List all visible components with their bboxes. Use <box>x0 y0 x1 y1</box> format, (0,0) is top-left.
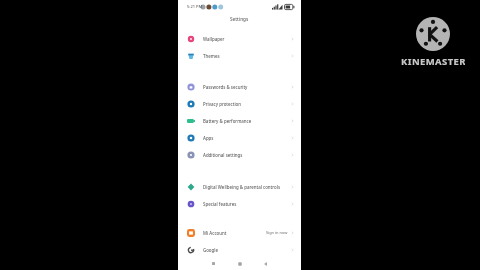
button[interactable]: Passwords & security <box>178 78 301 95</box>
staticText: Apps <box>203 135 214 141</box>
button[interactable]: Digital Wellbeing & parental controls <box>178 178 301 195</box>
staticText: KINEMASTER <box>401 55 465 68</box>
button[interactable]: Recents <box>208 258 219 269</box>
button[interactable]: Mi Account <box>178 224 301 241</box>
button[interactable]: Themes <box>178 47 301 64</box>
button[interactable]: Back <box>260 258 271 269</box>
button[interactable]: Google <box>178 241 301 258</box>
staticText: Themes <box>203 53 220 59</box>
staticText: Google <box>203 247 218 253</box>
staticText: Settings <box>230 16 249 22</box>
staticText: Privacy protection <box>203 101 241 107</box>
staticText: Special features <box>203 201 237 207</box>
staticText: Sign in now <box>266 230 288 235</box>
staticText: Wallpaper <box>203 36 225 42</box>
staticText: Battery & performance <box>203 118 252 124</box>
button[interactable]: Special features <box>178 195 301 212</box>
button[interactable]: Apps <box>178 129 301 146</box>
staticText: Digital Wellbeing & parental controls <box>203 184 281 190</box>
button[interactable]: Additional settings <box>178 146 301 163</box>
staticText: Additional settings <box>203 152 243 158</box>
button[interactable]: Battery & performance <box>178 112 301 129</box>
button[interactable]: Wallpaper <box>178 30 301 47</box>
button[interactable]: Home <box>234 258 245 269</box>
staticText: Passwords & security <box>203 84 248 90</box>
button[interactable]: Privacy protection <box>178 95 301 112</box>
staticText: 5:21 PM <box>187 4 203 9</box>
staticText: Mi Account <box>203 230 227 236</box>
